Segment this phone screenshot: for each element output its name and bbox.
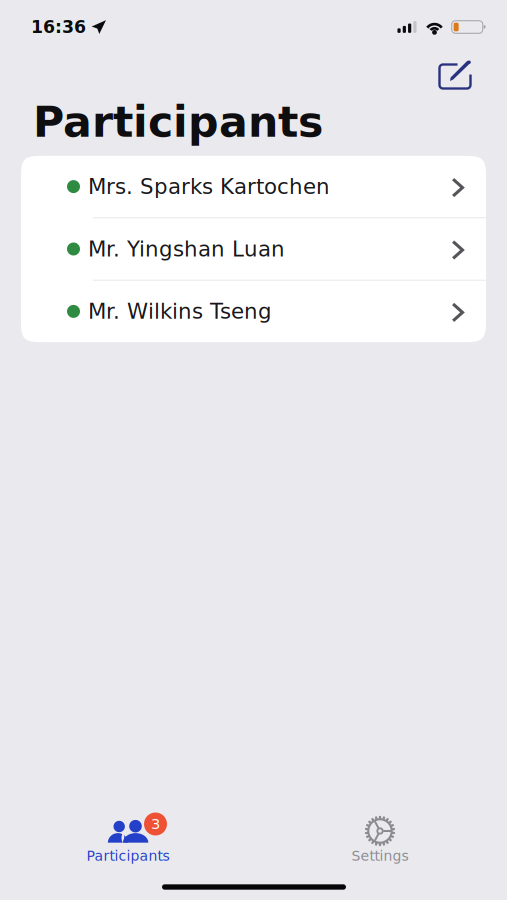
button[interactable]: Mr. Wilkins Tseng bbox=[21, 281, 486, 342]
staticText: Participants bbox=[86, 848, 169, 864]
staticText: Participants bbox=[33, 97, 323, 147]
button[interactable]: Settings bbox=[317, 819, 443, 881]
button[interactable]: Compose bbox=[432, 54, 478, 95]
staticText: 16:36 bbox=[31, 17, 86, 37]
button[interactable]: Mr. Yingshan Luan bbox=[21, 218, 486, 280]
staticText: Mrs. Sparks Kartochen bbox=[88, 174, 330, 199]
staticText: Settings bbox=[351, 848, 408, 864]
staticText: 3 bbox=[151, 815, 160, 833]
button[interactable]: 3 bbox=[64, 819, 190, 881]
staticText: Mr. Yingshan Luan bbox=[88, 237, 285, 261]
button[interactable]: Mrs. Sparks Kartochen bbox=[21, 156, 486, 217]
staticText: Mr. Wilkins Tseng bbox=[88, 299, 272, 324]
